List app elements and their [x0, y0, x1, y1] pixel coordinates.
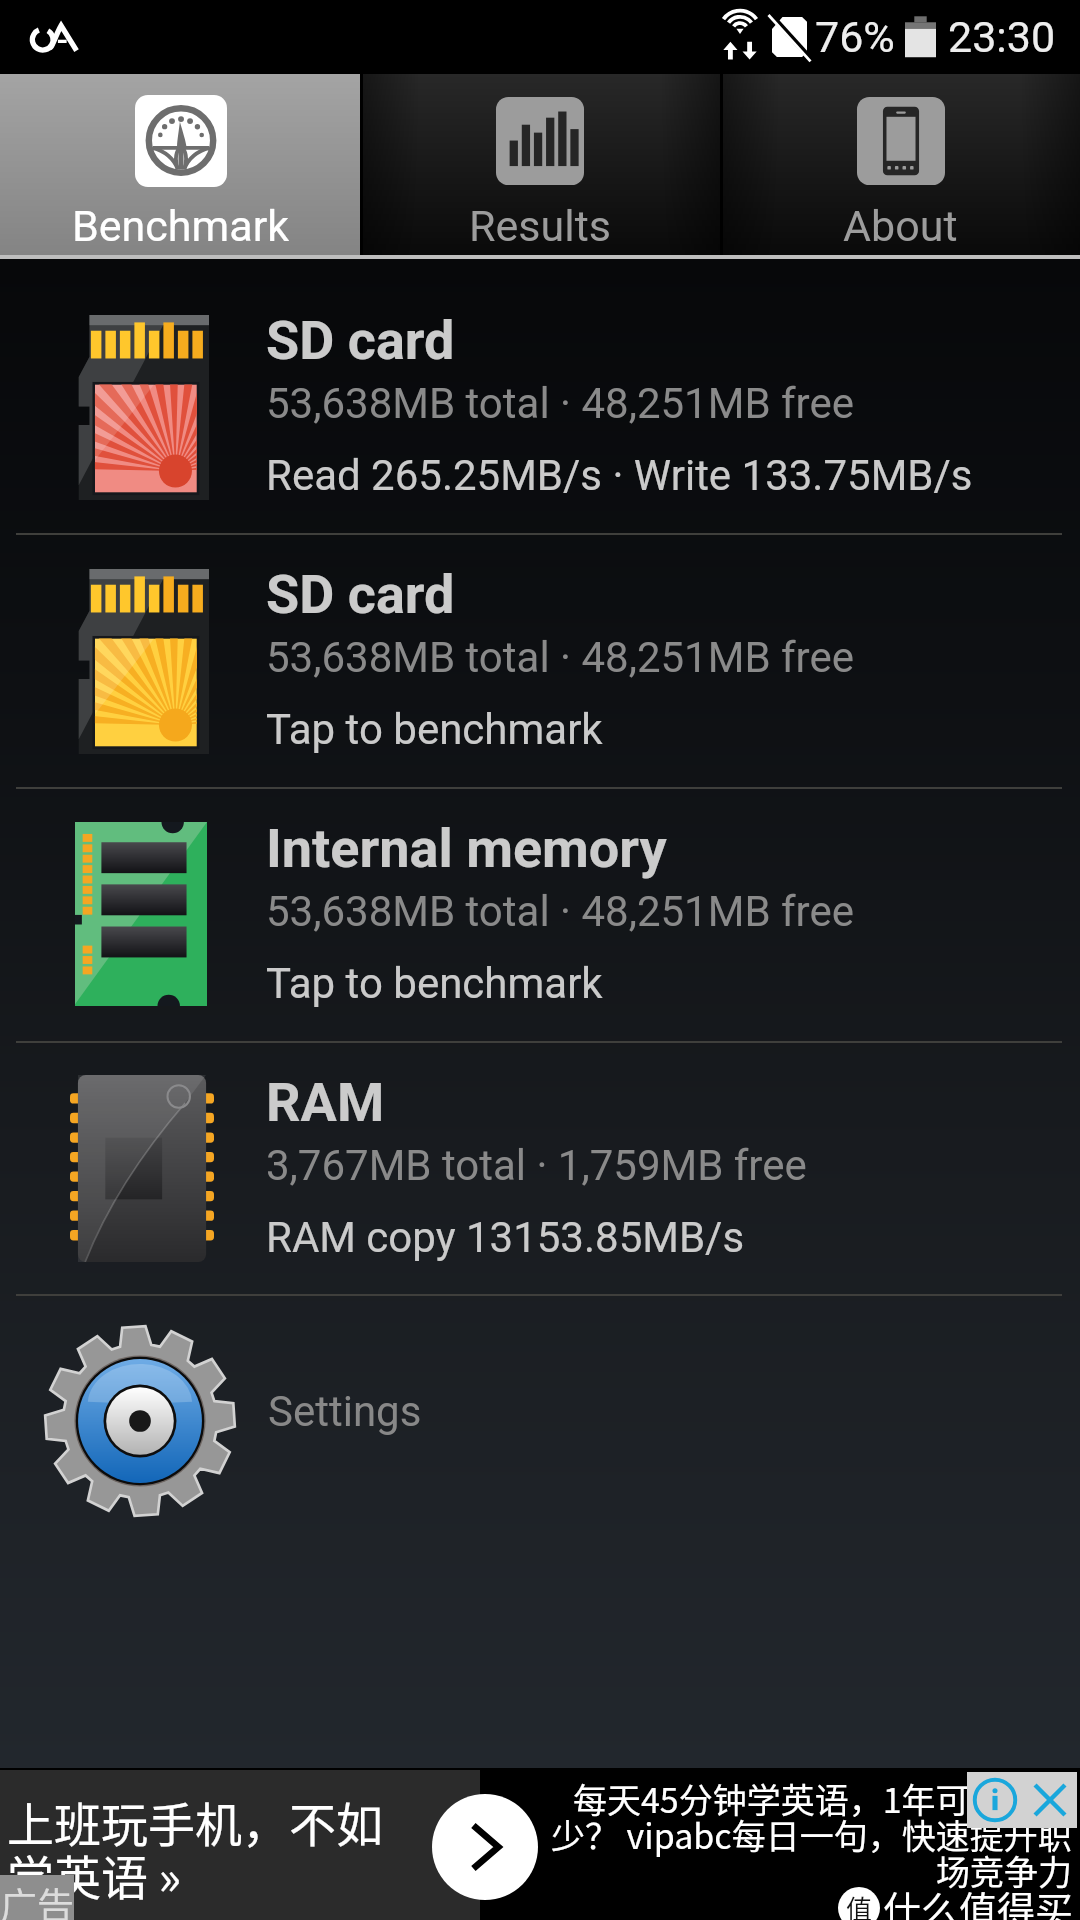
staticText: Results: [469, 201, 611, 251]
button[interactable]: Internal memory: [0, 788, 1080, 1041]
staticText: 3,767MB total · 1,759MB free: [266, 1141, 807, 1190]
staticText: 场竞争力: [936, 1846, 1072, 1895]
staticText: 什么值得买: [883, 1880, 1074, 1920]
staticText: SD card: [266, 563, 455, 626]
staticText: 76%: [815, 12, 895, 62]
button[interactable]: Close ad: [1022, 1772, 1077, 1828]
staticText: RAM copy 13153.85MB/s: [266, 1213, 745, 1262]
staticText: 值: [846, 1889, 873, 1920]
staticText: 上班玩手机，不如: [7, 1787, 383, 1855]
button[interactable]: Settings: [0, 1295, 1080, 1548]
staticText: Tap to benchmark: [266, 959, 603, 1008]
staticText: 学英语 »: [7, 1840, 182, 1908]
button[interactable]: Results: [360, 74, 720, 259]
staticText: SD card: [266, 309, 455, 372]
staticText: About: [843, 201, 958, 251]
staticText: Settings: [268, 1387, 422, 1436]
button[interactable]: Ad info: [967, 1772, 1022, 1828]
button[interactable]: SD card: [0, 280, 1080, 533]
button[interactable]: RAM: [0, 1042, 1080, 1295]
staticText: 每天45分钟学英语，1年可以省多: [573, 1774, 1072, 1823]
staticText: RAM: [266, 1071, 385, 1134]
staticText: Benchmark: [72, 201, 289, 251]
staticText: 53,638MB total · 48,251MB free: [266, 379, 854, 428]
button[interactable]: SD card: [0, 534, 1080, 787]
staticText: Tap to benchmark: [266, 705, 603, 754]
staticText: 少？ vipabc每日一句，快速提升职: [551, 1810, 1072, 1859]
button[interactable]: Benchmark: [0, 74, 360, 259]
staticText: Read 265.25MB/s · Write 133.75MB/s: [266, 451, 973, 500]
staticText: 53,638MB total · 48,251MB free: [266, 887, 854, 936]
staticText: 广告: [0, 1877, 74, 1920]
button[interactable]: Open ad: [432, 1794, 538, 1900]
button[interactable]: About: [720, 74, 1080, 259]
staticText: 53,638MB total · 48,251MB free: [266, 633, 854, 682]
staticText: Internal memory: [266, 817, 667, 880]
staticText: 23:30: [948, 12, 1056, 62]
